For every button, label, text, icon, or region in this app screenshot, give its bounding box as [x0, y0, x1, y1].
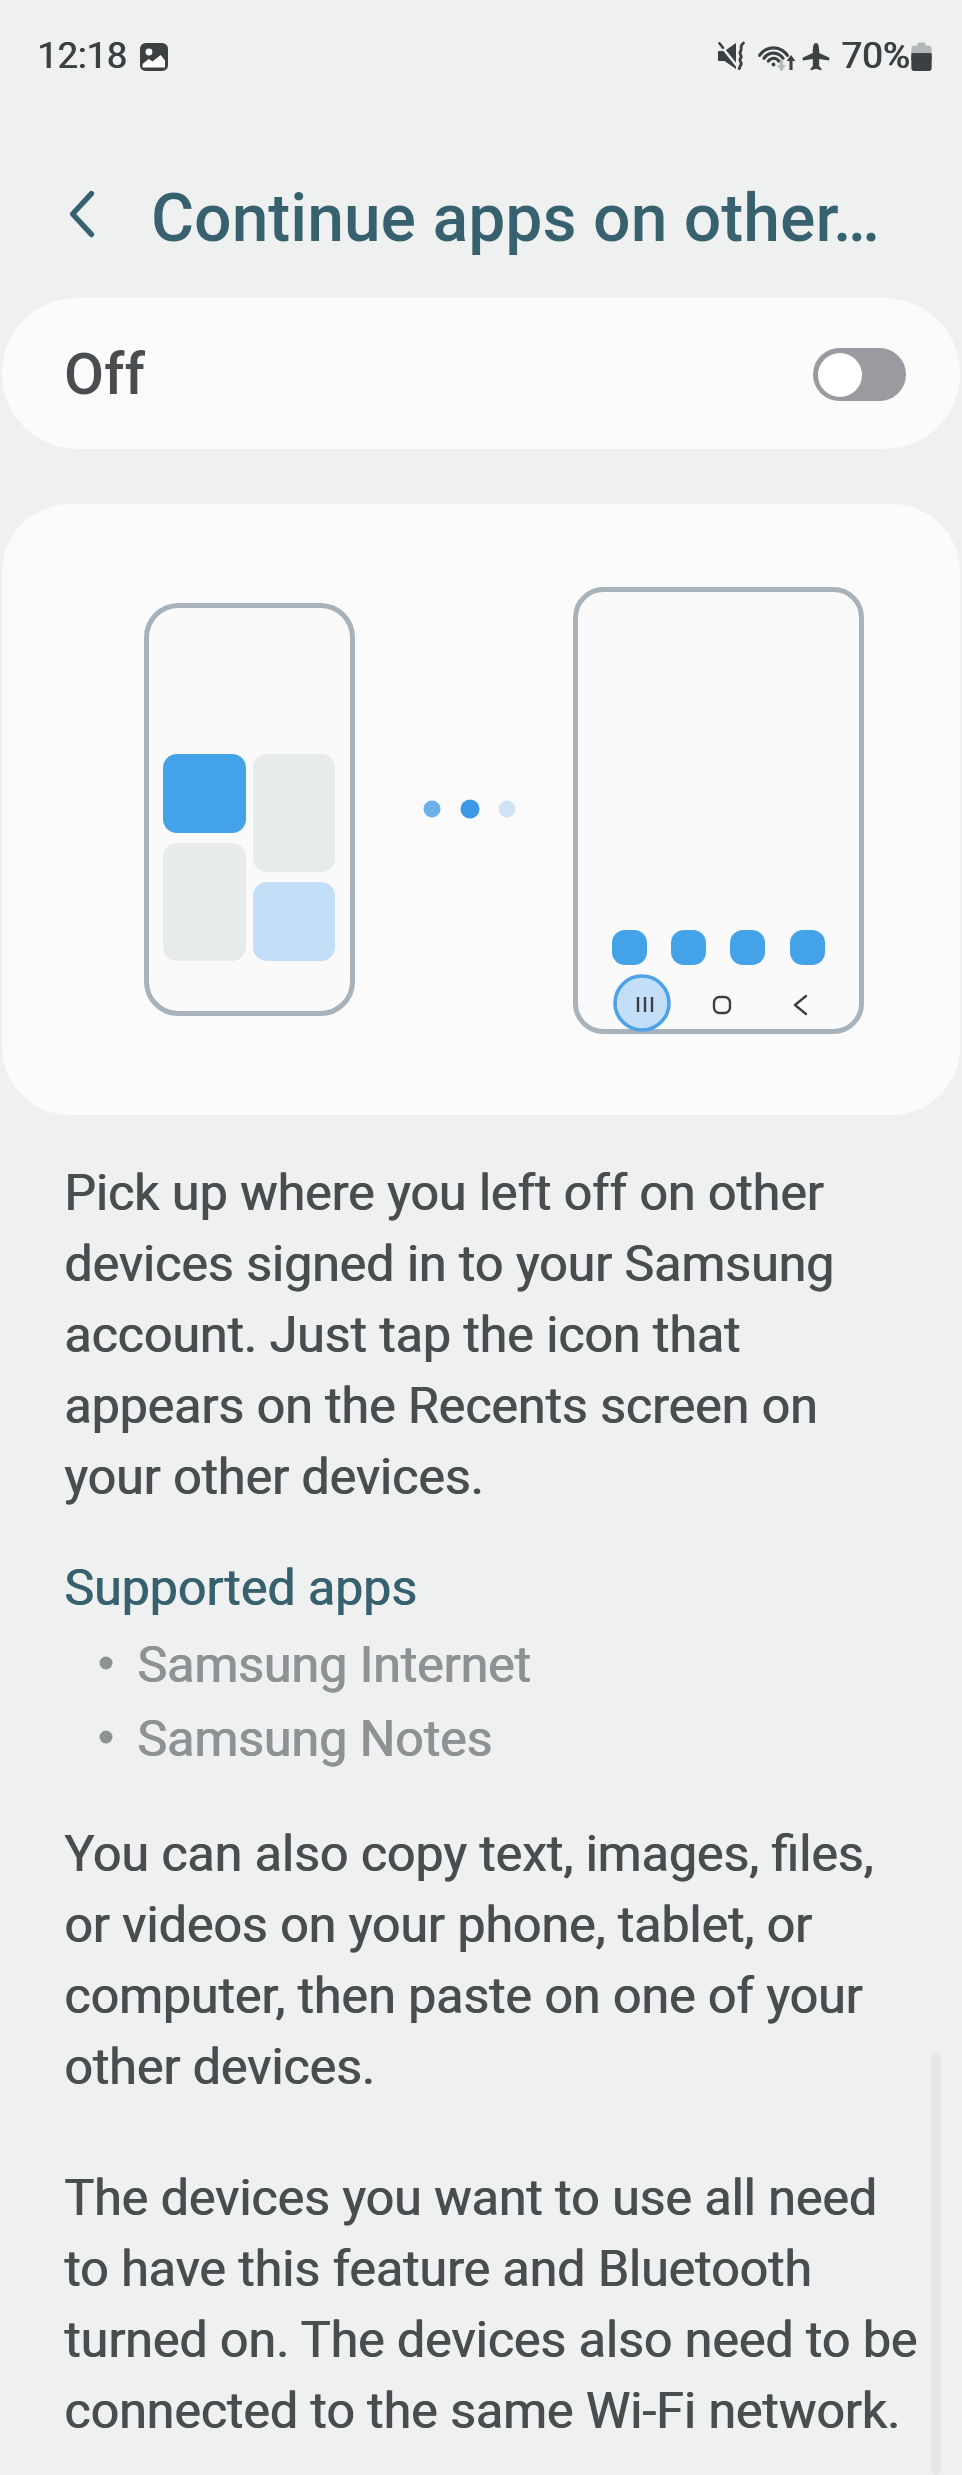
staticText: You can also copy text, images, files, o…	[64, 1815, 894, 2099]
staticText: Samsung Internet	[137, 1626, 531, 1697]
staticText: Continue apps on other…	[151, 178, 880, 258]
staticText: Supported apps	[64, 1549, 417, 1620]
staticText: Supported apps	[65, 1549, 418, 1620]
staticText: Off	[64, 340, 146, 408]
button[interactable]: Off	[2, 298, 960, 449]
staticText: Pick up where you left off on other devi…	[64, 1154, 864, 1509]
staticText: Samsung Internet	[138, 1626, 532, 1697]
staticText: 70%	[842, 35, 911, 77]
staticText: Pick up where you left off on other devi…	[65, 1154, 865, 1509]
staticText: Samsung Notes	[137, 1700, 493, 1771]
staticText: The devices you want to use all need to …	[65, 2159, 925, 2443]
staticText: Samsung Notes	[138, 1700, 494, 1771]
staticText: 12:18	[38, 35, 128, 77]
staticText: You can also copy text, images, files, o…	[65, 1815, 895, 2099]
staticText: 70%	[841, 35, 910, 77]
staticText: The devices you want to use all need to …	[64, 2159, 924, 2443]
button[interactable]: Navigate up	[48, 180, 116, 248]
staticText: 12:18	[37, 35, 127, 77]
